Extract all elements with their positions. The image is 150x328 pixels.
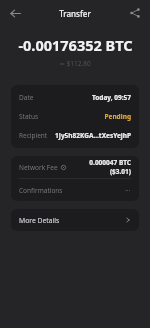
staticText: Transfer [59, 8, 91, 19]
staticText: Network Fee [19, 163, 58, 172]
staticText: 1Jy5h82KGA...tXesYejhP [55, 131, 131, 140]
staticText: 0.000047 BTC ($3.01) [67, 158, 131, 176]
staticText: Today, 09:57 [91, 93, 131, 102]
staticText: Status [19, 112, 39, 121]
staticText: Pending [104, 112, 131, 121]
staticText: Confirmations [19, 186, 63, 195]
staticText: ··· [125, 186, 131, 195]
button[interactable]: Network Fee [11, 156, 139, 178]
button[interactable]: Date [11, 88, 139, 107]
staticText: -0.00176352 BTC [18, 35, 133, 55]
staticText: More Details [19, 216, 60, 225]
staticText: Date [19, 93, 34, 102]
staticText: ≈ $112.80 [59, 59, 91, 68]
button[interactable]: More Details [11, 209, 139, 231]
button[interactable]: Share [125, 3, 145, 23]
button[interactable]: Status [11, 107, 139, 126]
button[interactable]: Back [5, 3, 25, 23]
button[interactable]: Recipient [11, 126, 139, 145]
staticText: Recipient [19, 131, 48, 140]
button[interactable]: Confirmations [11, 179, 139, 201]
